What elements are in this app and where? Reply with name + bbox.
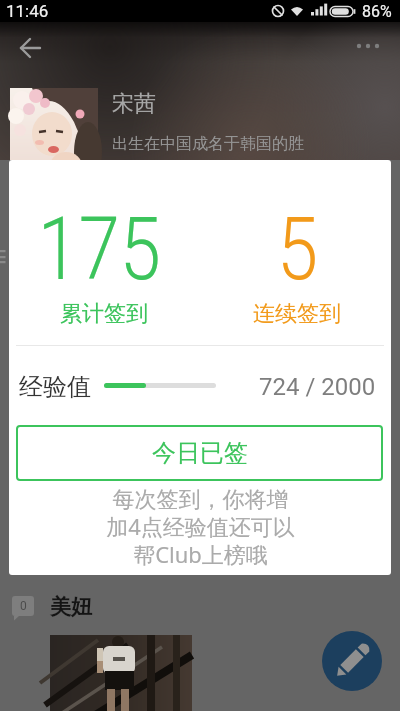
staticText: 出生在中国成名于韩国的胜: [112, 134, 304, 154]
button[interactable]: 0: [12, 596, 34, 616]
staticText: 累计签到: [60, 300, 148, 328]
staticText: 175: [38, 197, 161, 289]
staticText: 86%: [362, 2, 392, 21]
staticText: 11:46: [6, 1, 49, 21]
staticText: 每次签到，你将增 加4点经验值还可以 帮Club上榜哦: [106, 486, 295, 570]
button[interactable]: [350, 36, 390, 56]
button[interactable]: 今日已签: [16, 425, 383, 481]
button[interactable]: [10, 88, 98, 176]
button[interactable]: [322, 631, 382, 691]
staticText: 今日已签: [152, 438, 248, 468]
staticText: 美妞: [50, 594, 92, 620]
staticText: 724 / 2000: [259, 373, 376, 401]
staticText: 5: [277, 197, 318, 289]
button[interactable]: [12, 36, 48, 60]
staticText: 经验值: [19, 372, 91, 402]
staticText: 0: [20, 599, 27, 613]
staticText: 连续签到: [253, 300, 341, 328]
staticText: 宋茜: [112, 90, 156, 118]
